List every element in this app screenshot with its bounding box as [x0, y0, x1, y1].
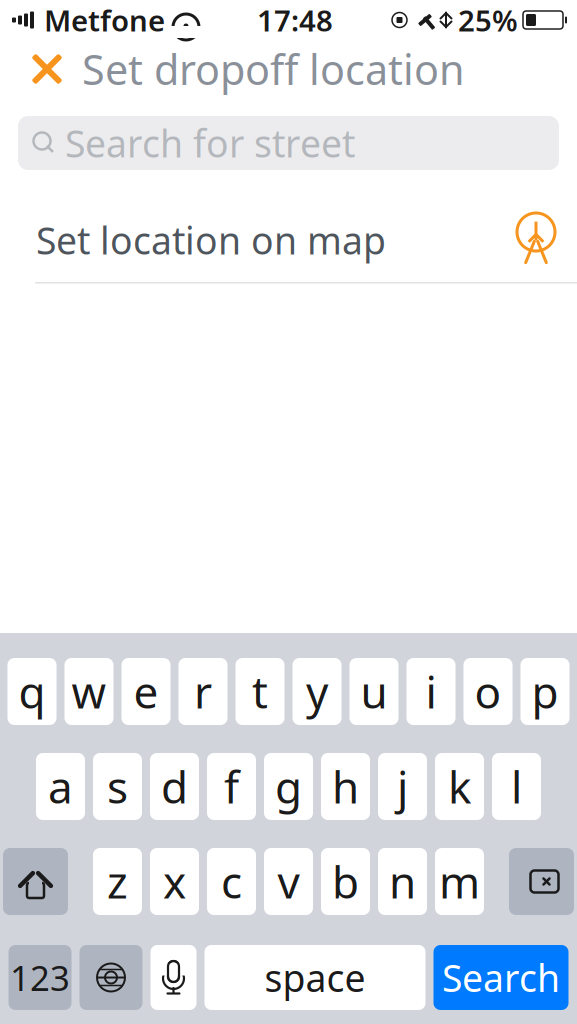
staticText: z — [107, 852, 128, 911]
staticText: a — [48, 757, 73, 816]
staticText: n — [389, 852, 416, 911]
button[interactable]: m — [435, 848, 484, 915]
button[interactable]: n — [378, 848, 427, 915]
button[interactable]: Close — [12, 41, 82, 97]
button[interactable]: Search for street — [18, 116, 559, 170]
button[interactable]: r — [178, 658, 227, 725]
staticText: i — [425, 662, 436, 721]
staticText: g — [275, 757, 302, 816]
staticText: d — [161, 757, 188, 816]
button[interactable]: Next keyboard — [79, 945, 142, 1010]
button[interactable]: t — [235, 658, 284, 725]
staticText: p — [531, 662, 558, 721]
button[interactable]: w — [64, 658, 113, 725]
staticText: w — [71, 662, 106, 721]
staticText: h — [332, 757, 359, 816]
button[interactable]: z — [93, 848, 142, 915]
button[interactable]: y — [292, 658, 341, 725]
button[interactable]: e — [121, 658, 170, 725]
staticText: k — [448, 757, 471, 816]
button[interactable]: x — [150, 848, 199, 915]
button[interactable]: p — [520, 658, 569, 725]
button[interactable]: Delete — [509, 848, 574, 915]
button[interactable]: l — [492, 753, 541, 820]
staticText: o — [474, 662, 501, 721]
staticText: space — [264, 953, 365, 1002]
button[interactable]: s — [93, 753, 142, 820]
staticText: Search for street — [65, 118, 355, 168]
button[interactable]: 123 — [8, 945, 71, 1010]
staticText: e — [133, 662, 158, 721]
staticText: s — [107, 757, 128, 816]
button[interactable]: Shift — [3, 848, 68, 915]
button[interactable]: c — [207, 848, 256, 915]
button[interactable]: f — [207, 753, 256, 820]
button[interactable]: g — [264, 753, 313, 820]
staticText: f — [224, 757, 239, 816]
button[interactable]: v — [264, 848, 313, 915]
staticText: j — [397, 757, 408, 816]
staticText: q — [18, 662, 45, 721]
staticText: x — [163, 852, 186, 911]
button[interactable]: b — [321, 848, 370, 915]
button[interactable]: Set location on map — [0, 198, 577, 283]
staticText: v — [277, 852, 299, 911]
staticText: 17:48 — [257, 0, 333, 39]
staticText: y — [306, 662, 328, 721]
button[interactable]: i — [406, 658, 455, 725]
staticText: t — [252, 662, 268, 721]
staticText: Search — [442, 953, 560, 1002]
button[interactable]: j — [378, 753, 427, 820]
button[interactable]: h — [321, 753, 370, 820]
button[interactable]: a — [36, 753, 85, 820]
button[interactable]: o — [463, 658, 512, 725]
staticText: l — [511, 757, 522, 816]
button[interactable]: Search — [433, 945, 568, 1010]
staticText: r — [194, 662, 212, 721]
staticText: Metfone — [44, 0, 165, 39]
staticText: u — [360, 662, 387, 721]
button[interactable]: d — [150, 753, 199, 820]
staticText: Set dropoff location — [82, 42, 465, 96]
button[interactable]: q — [7, 658, 56, 725]
staticText: Set location on map — [36, 215, 386, 265]
staticText: b — [332, 852, 359, 911]
staticText: 25% — [458, 0, 518, 39]
staticText: m — [439, 852, 480, 911]
button[interactable]: space — [204, 945, 425, 1010]
staticText: c — [221, 852, 242, 911]
button[interactable]: k — [435, 753, 484, 820]
button[interactable]: Dictation — [150, 945, 196, 1010]
staticText: 123 — [10, 954, 70, 1000]
button[interactable]: u — [349, 658, 398, 725]
